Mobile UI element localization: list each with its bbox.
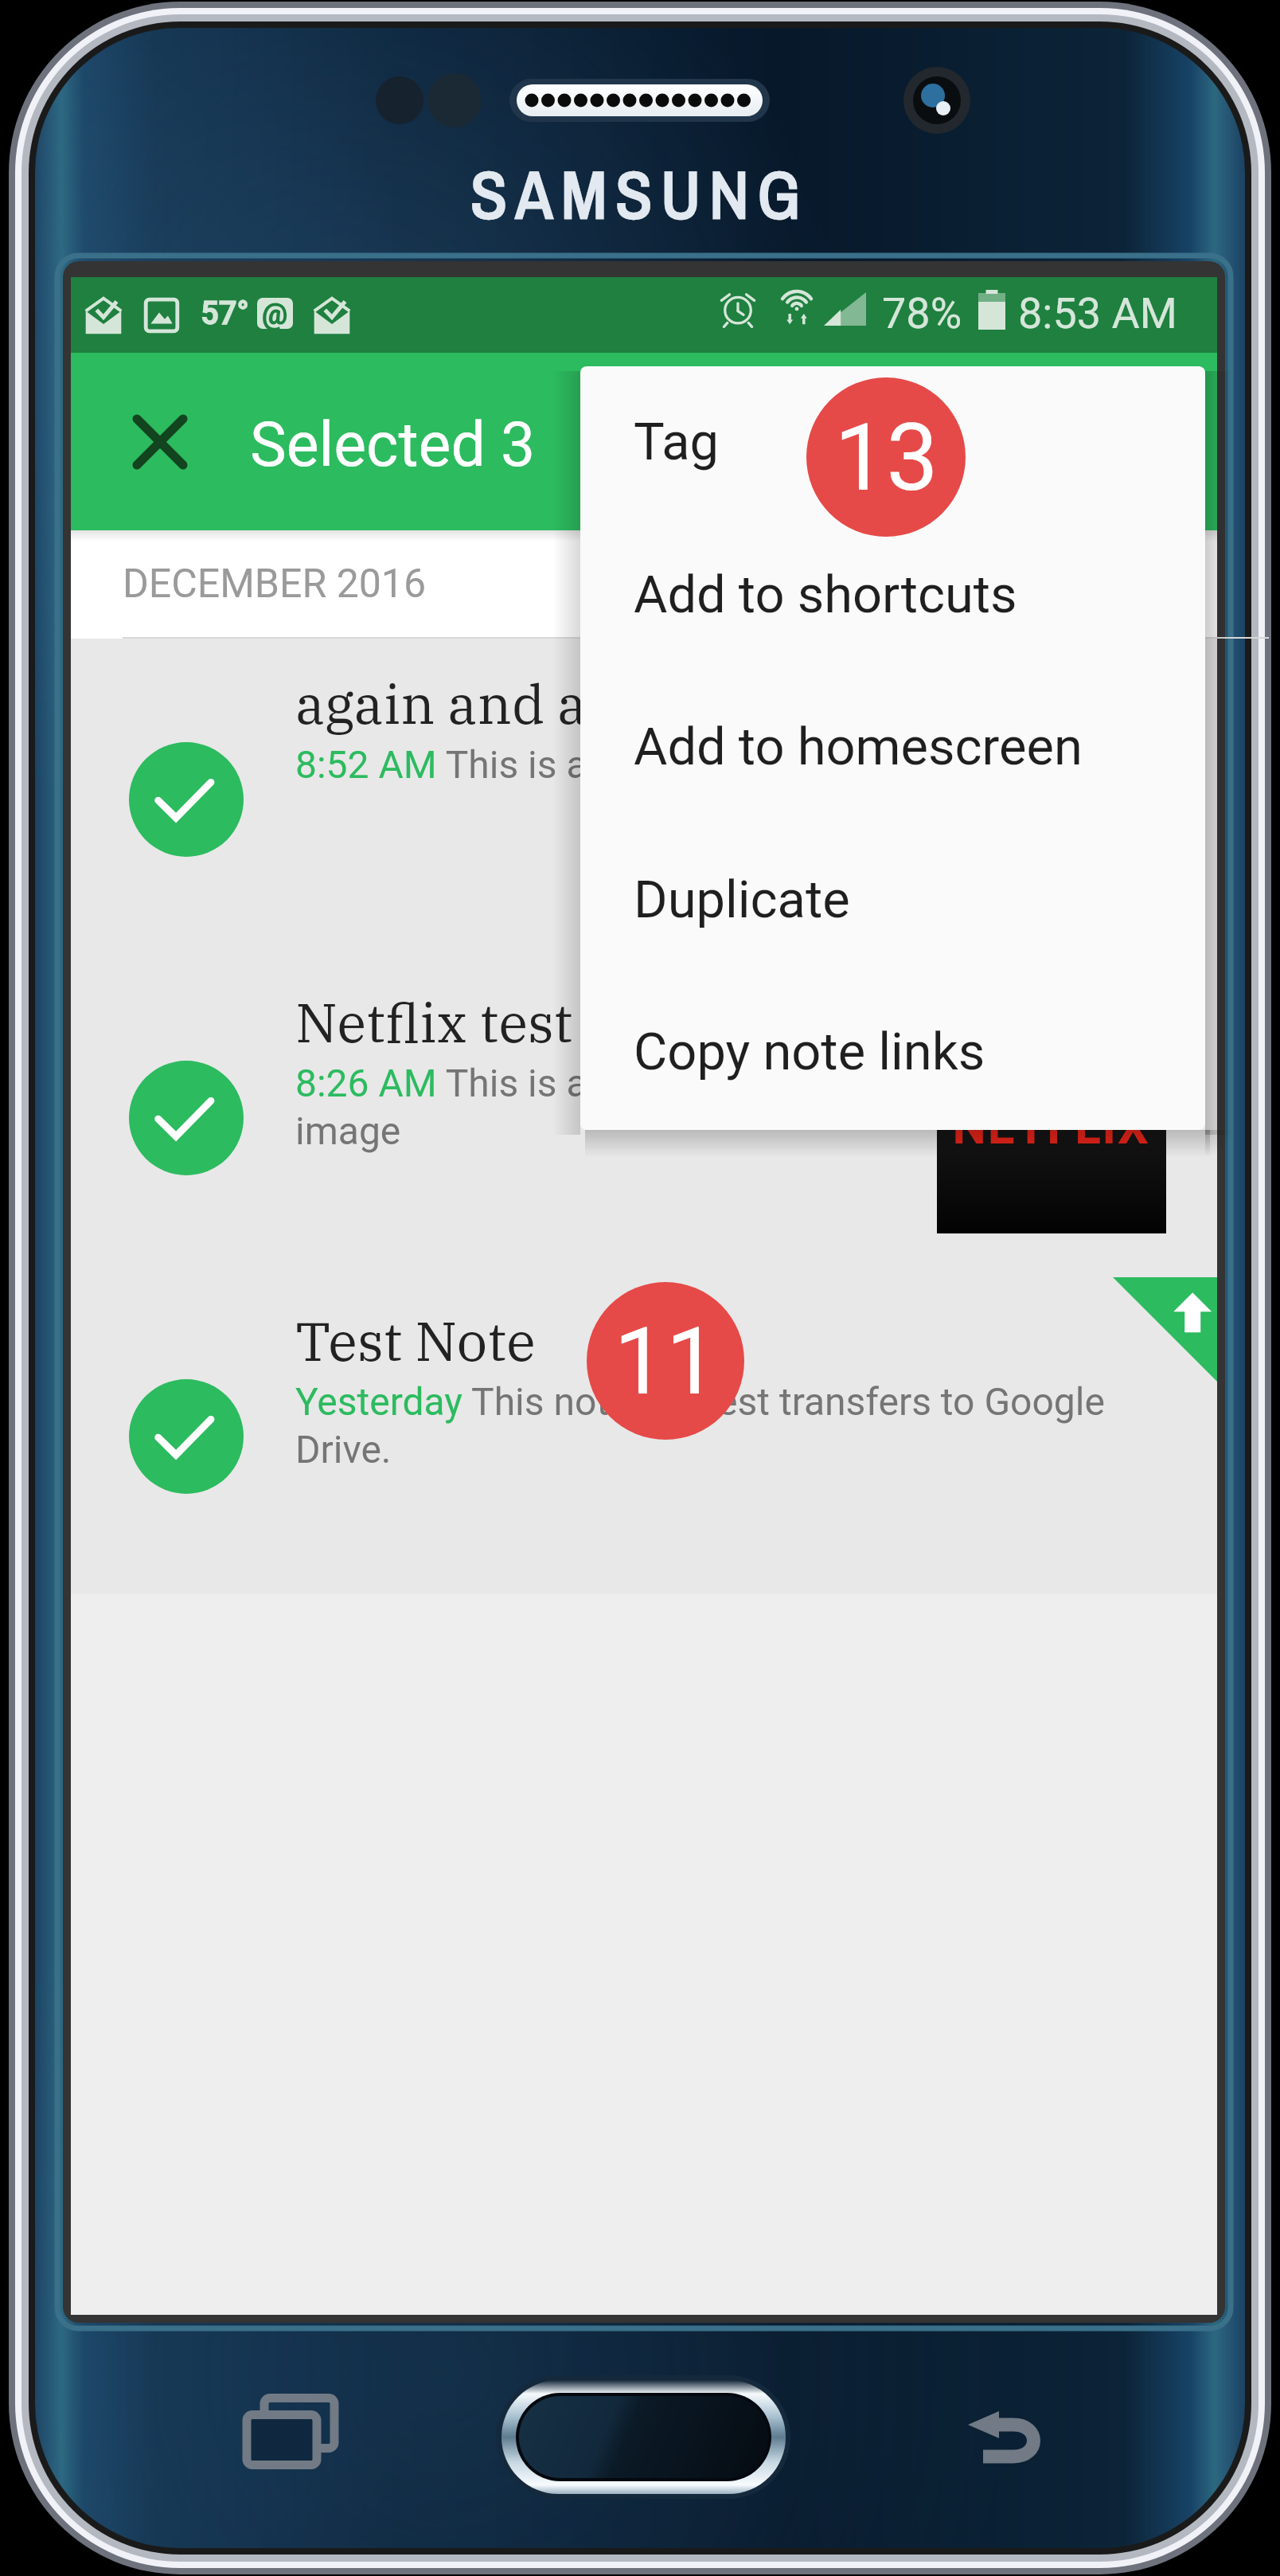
button[interactable]: Copy note links xyxy=(580,976,1205,1128)
staticText: Tag xyxy=(634,412,720,472)
button[interactable]: Back xyxy=(959,2389,1052,2481)
button[interactable]: NETFLIX xyxy=(71,957,1217,1276)
button[interactable]: Selected xyxy=(129,1061,244,1175)
button[interactable]: Recent apps xyxy=(239,2389,331,2481)
button[interactable]: Selected xyxy=(71,639,1217,957)
button[interactable]: Selected xyxy=(129,1379,244,1494)
button[interactable]: Add to shortcuts xyxy=(580,519,1205,670)
staticText: Copy note links xyxy=(634,1022,985,1082)
staticText: 8:26 AM This is a image xyxy=(295,1061,1219,1153)
staticText: Test Note xyxy=(295,1305,536,1375)
staticText: 11 xyxy=(614,1308,718,1416)
staticText: DECEMBER 2016 xyxy=(123,561,427,608)
staticText: Add to homescreen xyxy=(634,717,1083,777)
staticText: Netflix test xyxy=(295,987,573,1057)
staticText: again and again xyxy=(295,668,697,738)
staticText: 8:53 AM xyxy=(1018,288,1177,338)
staticText: SAMSUNG xyxy=(470,149,810,239)
button[interactable]: Selected xyxy=(129,742,244,857)
staticText: @ xyxy=(262,298,288,329)
staticText: 13 xyxy=(834,404,939,512)
button[interactable]: Home xyxy=(494,2373,793,2502)
staticText: Add to shortcuts xyxy=(634,565,1017,625)
staticText: 78% xyxy=(882,288,962,338)
staticText: Selected 3 xyxy=(250,409,536,481)
button[interactable]: Add to homescreen xyxy=(580,671,1205,823)
button[interactable]: Duplicate xyxy=(580,824,1205,975)
button[interactable]: Close selection xyxy=(106,388,214,496)
button[interactable]: Tag xyxy=(580,366,1205,518)
staticText: Duplicate xyxy=(634,870,850,930)
staticText: NETFLIX xyxy=(953,1100,1150,1154)
staticText: 57° xyxy=(201,295,249,332)
staticText: Yesterday This note will test transfers … xyxy=(295,1379,1219,1472)
button[interactable]: Selected xyxy=(71,1276,1217,1594)
staticText: 8:52 AM This is a xyxy=(295,742,1219,787)
